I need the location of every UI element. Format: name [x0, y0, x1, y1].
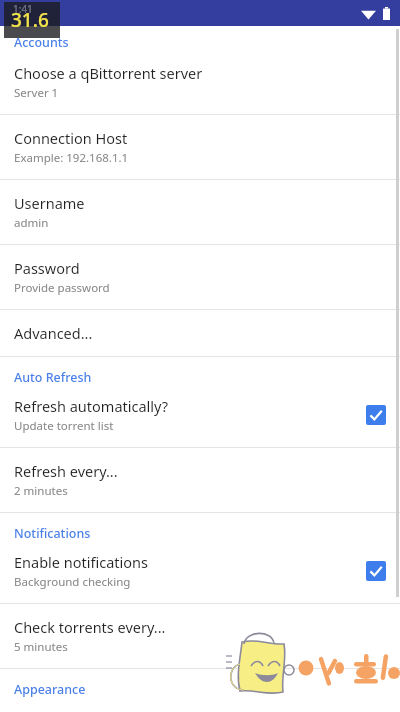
staticText: Check torrents every...	[14, 617, 166, 637]
staticText: Auto Refresh	[14, 369, 92, 386]
staticText: Accounts	[14, 34, 69, 51]
button[interactable]: Refresh every...	[0, 448, 400, 512]
staticText: Notifications	[14, 525, 91, 542]
staticText: Example: 192.168.1.1	[14, 150, 129, 166]
button[interactable]: Connection Host	[0, 115, 400, 179]
staticText: 31.6	[11, 7, 49, 33]
staticText: admin	[14, 215, 49, 231]
staticText: 1:41	[13, 2, 33, 16]
staticText: Enable notifications	[14, 552, 148, 572]
button[interactable]: Temperature overlay 31.6	[4, 2, 60, 38]
staticText: Advanced...	[14, 323, 93, 343]
button[interactable]: Check torrents every...	[0, 604, 400, 668]
staticText: 5 minutes	[14, 639, 68, 655]
staticText: Provide password	[14, 280, 110, 296]
button[interactable]: Refresh automatically?	[0, 388, 400, 447]
staticText: Refresh automatically?	[14, 396, 169, 416]
staticText: Password	[14, 258, 80, 278]
button[interactable]: Enabled checkbox	[366, 561, 386, 581]
staticText: Update torrent list	[14, 418, 114, 434]
staticText: Username	[14, 193, 85, 213]
button[interactable]: Username	[0, 180, 400, 244]
button[interactable]: Advanced...	[0, 310, 400, 356]
staticText: Server 1	[14, 85, 59, 101]
button[interactable]: Password	[0, 245, 400, 309]
button[interactable]: Choose a qBittorrent server	[0, 53, 400, 114]
staticText: Connection Host	[14, 128, 128, 148]
button[interactable]: Enabled checkbox	[366, 405, 386, 425]
button[interactable]: Enable notifications	[0, 544, 400, 603]
staticText: 2 minutes	[14, 483, 68, 499]
staticText: Choose a qBittorrent server	[14, 63, 203, 83]
staticText: Background checking	[14, 574, 131, 590]
staticText: Refresh every...	[14, 461, 118, 481]
staticText: Appearance	[14, 681, 86, 698]
